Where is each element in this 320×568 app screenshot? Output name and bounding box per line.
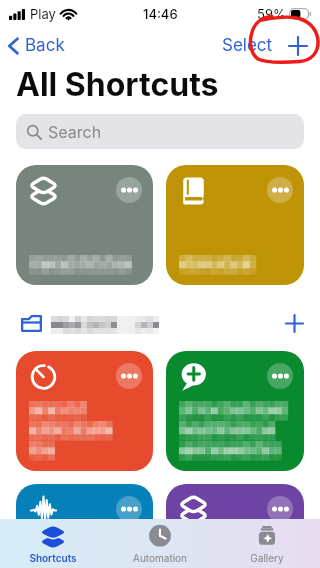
button[interactable]: More options: [267, 363, 293, 389]
button[interactable]: More options: [267, 177, 293, 203]
staticText: 14:46: [143, 6, 178, 22]
button[interactable]: Automation: [106, 519, 213, 568]
button[interactable]: More options: [116, 177, 142, 203]
button[interactable]: More options: [116, 363, 142, 389]
button[interactable]: More options: [16, 484, 153, 568]
staticText: Gallery: [250, 552, 284, 564]
button[interactable]: Add folder: [0, 308, 320, 338]
staticText: Shortcuts: [29, 552, 77, 564]
button[interactable]: Back: [0, 30, 73, 61]
button[interactable]: More options: [267, 496, 293, 522]
button[interactable]: More options: [116, 496, 142, 522]
button[interactable]: Add folder: [282, 311, 306, 335]
button[interactable]: More options: [16, 351, 153, 471]
button[interactable]: More options: [166, 165, 304, 285]
button[interactable]: Gallery: [213, 519, 320, 568]
staticText: Automation: [133, 552, 187, 564]
staticText: All Shortcuts: [16, 65, 219, 104]
staticText: Search: [48, 122, 102, 141]
button[interactable]: More options: [16, 165, 153, 285]
button[interactable]: More options: [166, 351, 304, 471]
staticText: Back: [25, 35, 65, 56]
staticText: Select: [222, 35, 273, 56]
staticText: Play: [30, 6, 56, 22]
button[interactable]: Select: [220, 30, 275, 61]
button[interactable]: Search: [16, 114, 304, 149]
button[interactable]: More options: [166, 484, 304, 568]
staticText: 59%: [257, 6, 286, 22]
button[interactable]: Add shortcut: [287, 35, 309, 57]
button[interactable]: Shortcuts: [0, 519, 106, 568]
